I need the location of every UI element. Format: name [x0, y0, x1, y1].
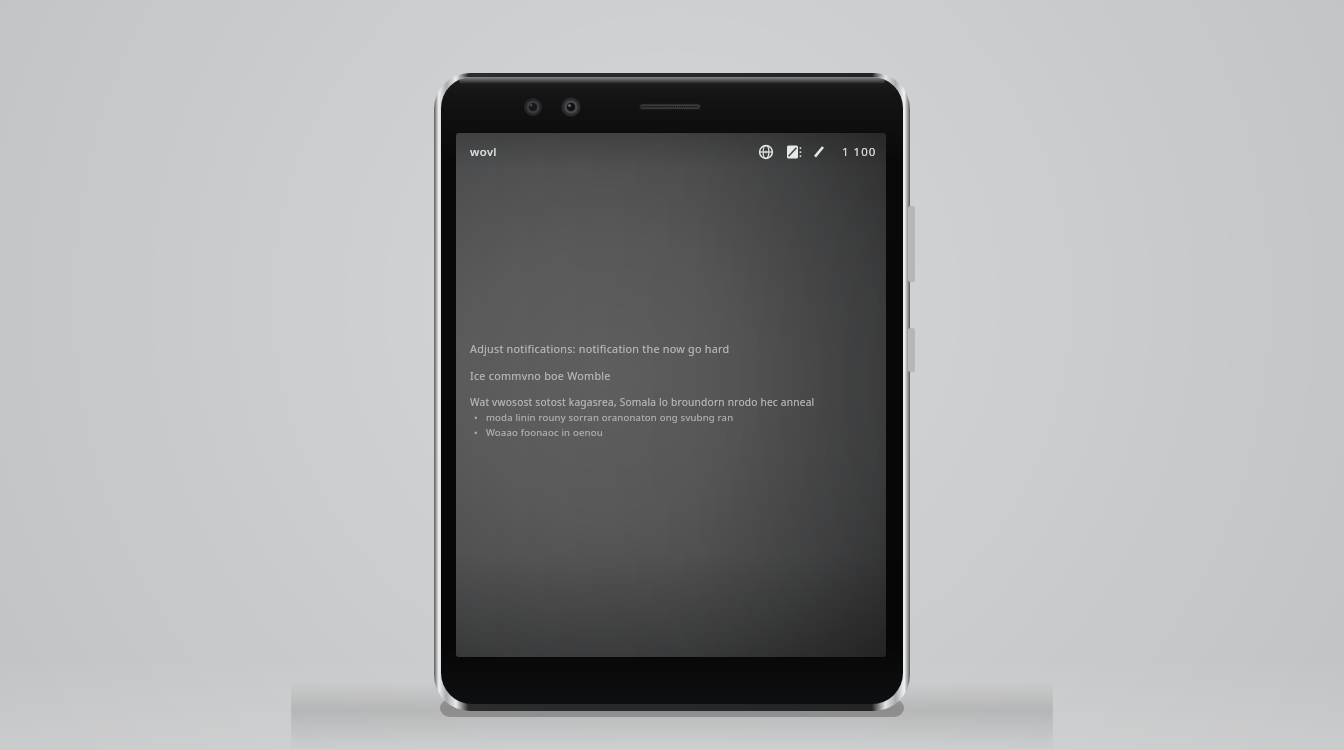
staticText: wovl	[470, 144, 497, 160]
button[interactable]: Network, app and signal status	[752, 140, 832, 164]
staticText: • Woaao foonaoc in oenou	[474, 426, 603, 439]
staticText: Wat vwosost sotost kagasrea, Somala lo b…	[470, 395, 815, 409]
button[interactable]: 1 100	[840, 141, 886, 163]
staticText: 1 100	[842, 144, 877, 160]
staticText: • moda linin rouny sorran oranonaton ong…	[474, 411, 734, 424]
staticText: Ice commvno boe Womble	[470, 368, 611, 383]
button[interactable]: wovl	[466, 141, 526, 163]
staticText: Adjust notifications: notification the n…	[470, 341, 730, 356]
